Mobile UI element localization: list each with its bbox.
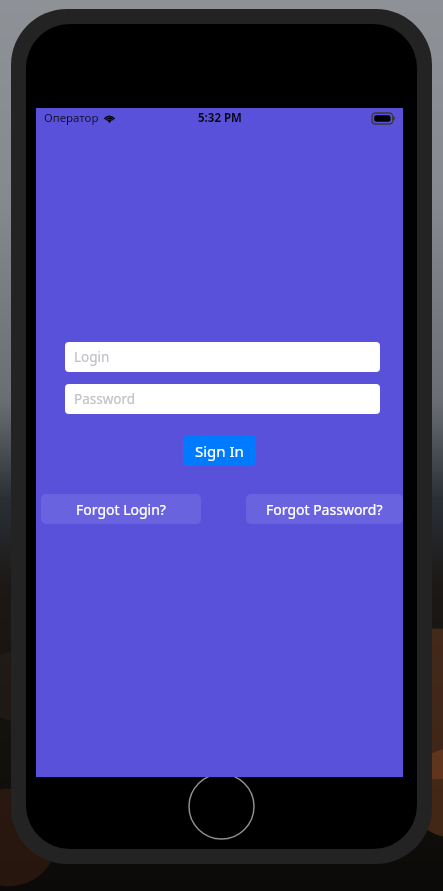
staticText: Login (74, 348, 110, 366)
button[interactable]: Password (65, 384, 380, 414)
button[interactable]: Forgot Password? (246, 494, 403, 524)
staticText: 5:32 PM (198, 110, 242, 126)
staticText: Password (74, 390, 136, 408)
other: Wi-Fi signal (103, 113, 116, 123)
other: Battery full (372, 113, 395, 124)
staticText: Forgot Password? (266, 500, 383, 519)
staticText: Sign In (195, 441, 244, 461)
button[interactable]: Sign In (183, 435, 256, 466)
button[interactable]: Login (65, 342, 380, 372)
button[interactable]: Forgot Login? (41, 494, 201, 524)
staticText: Forgot Login? (76, 500, 166, 519)
staticText: Оператор (44, 110, 99, 126)
